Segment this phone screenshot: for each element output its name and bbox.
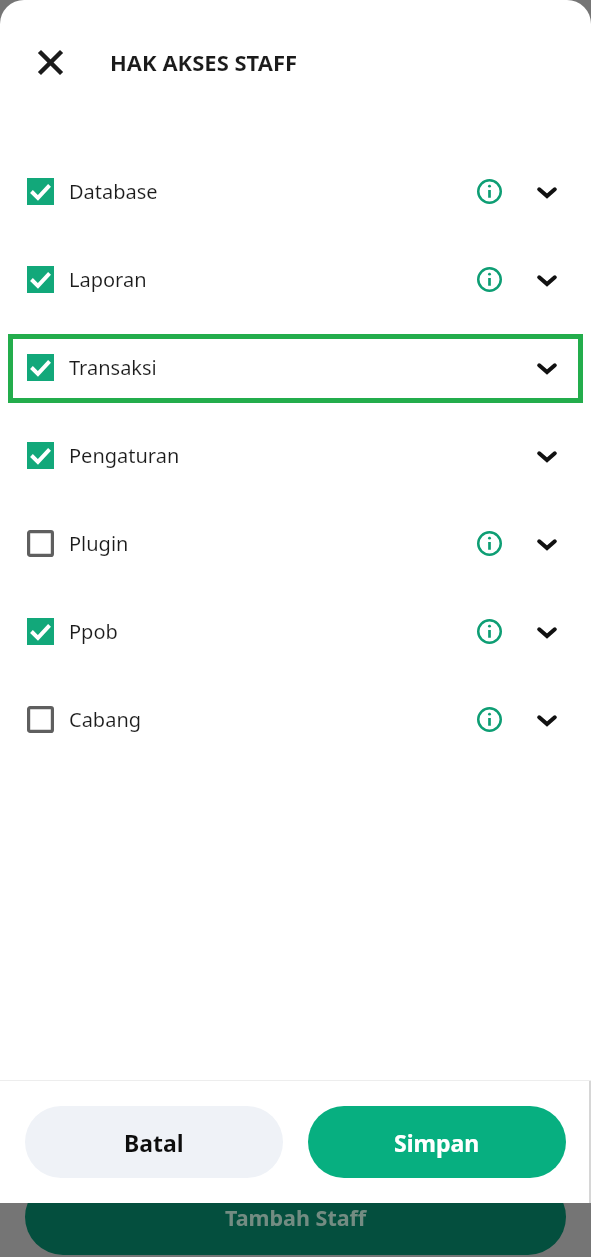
staticText: Cabang: [69, 706, 142, 733]
button[interactable]: Tambah Staff: [25, 1179, 566, 1255]
staticText: Plugin: [69, 530, 129, 557]
button[interactable]: Laporan: [8, 246, 583, 315]
button[interactable]: Info: [477, 267, 502, 292]
button[interactable]: Expand: [536, 269, 558, 291]
button[interactable]: Pengaturan: [8, 422, 583, 491]
button[interactable]: Expand: [536, 709, 558, 731]
button[interactable]: Info: [477, 707, 502, 732]
staticText: Batal: [124, 1127, 184, 1158]
button[interactable]: Expand: [536, 621, 558, 643]
staticText: Simpan: [394, 1127, 480, 1158]
button[interactable]: Transaksi: [8, 334, 583, 403]
button[interactable]: Expand: [536, 533, 558, 555]
button[interactable]: Close: [28, 40, 72, 84]
staticText: Transaksi: [69, 354, 157, 381]
button[interactable]: Cabang: [8, 686, 583, 755]
staticText: Pengaturan: [69, 442, 180, 469]
button[interactable]: Batal: [25, 1106, 283, 1178]
button[interactable]: Info: [477, 179, 502, 204]
button[interactable]: Info: [477, 619, 502, 644]
staticText: HAK AKSES STAFF: [110, 47, 298, 77]
button[interactable]: Expand: [536, 445, 558, 467]
button[interactable]: Simpan: [308, 1106, 566, 1178]
button[interactable]: Database: [8, 158, 583, 227]
button[interactable]: Expand: [536, 357, 558, 379]
button[interactable]: Expand: [536, 181, 558, 203]
staticText: Laporan: [69, 266, 147, 293]
button[interactable]: Info: [477, 531, 502, 556]
staticText: Database: [69, 178, 158, 205]
button[interactable]: Plugin: [8, 510, 583, 579]
staticText: Ppob: [69, 618, 118, 645]
staticText: Tambah Staff: [225, 1203, 367, 1232]
button[interactable]: Ppob: [8, 598, 583, 667]
